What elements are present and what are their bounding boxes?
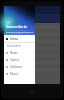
staticText: Inbox <box>10 37 19 41</box>
staticText: News <box>10 51 18 55</box>
button[interactable]: Software <box>4 63 35 70</box>
staticText: Sports <box>10 58 20 62</box>
staticText: Subscribed <box>7 44 21 48</box>
button[interactable]: Music <box>4 70 35 77</box>
staticText: vanessa.b@example.com <box>6 30 35 33</box>
staticText: Music <box>10 72 19 76</box>
button[interactable]: Inbox <box>4 35 35 42</box>
staticText: Vanessa Burke <box>6 25 28 29</box>
button[interactable]: Sports <box>4 56 35 63</box>
staticText: Software <box>10 65 23 69</box>
button[interactable]: News <box>4 49 35 56</box>
